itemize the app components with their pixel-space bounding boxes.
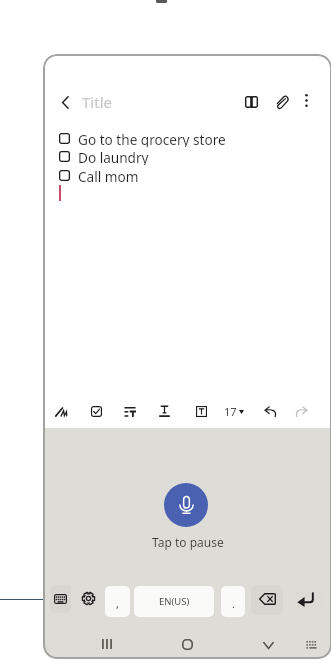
button[interactable]: Undo — [257, 398, 283, 424]
button[interactable]: Text box — [188, 398, 214, 424]
button[interactable]: Show keyboard — [50, 585, 71, 613]
button[interactable]: Home — [174, 631, 200, 657]
button[interactable]: Paragraph style — [117, 398, 143, 424]
button[interactable]: Keyboard settings — [77, 587, 100, 610]
button[interactable]: Enter — [288, 585, 322, 615]
staticText: Tap to pause — [152, 534, 224, 550]
button[interactable]: Font size 17 — [219, 398, 249, 424]
button[interactable]: Checklist — [83, 398, 109, 424]
staticText: Title — [82, 92, 112, 112]
button[interactable]: Call mom — [59, 167, 284, 184]
button[interactable]: Attach — [268, 89, 294, 115]
staticText: EN(US) — [159, 595, 190, 608]
button[interactable]: . — [221, 586, 245, 617]
staticText: Call mom — [78, 167, 139, 184]
button[interactable]: Backspace — [251, 585, 283, 615]
button[interactable]: Reading mode — [238, 89, 264, 115]
staticText: Go to the grocery store — [78, 130, 226, 147]
button[interactable]: Change keyboard — [298, 632, 324, 658]
button[interactable]: Pen — [48, 398, 74, 424]
staticText: , — [116, 596, 119, 611]
button[interactable]: Go to the grocery store — [59, 130, 284, 147]
button[interactable]: Redo — [288, 398, 314, 424]
button[interactable]: , — [105, 586, 130, 617]
button[interactable]: Recent apps — [94, 631, 120, 657]
button[interactable]: EN(US) — [134, 586, 214, 617]
button[interactable]: Back — [52, 89, 78, 115]
staticText: Do laundry — [78, 148, 149, 165]
staticText: 17 — [224, 404, 237, 419]
button[interactable]: Do laundry — [59, 148, 284, 165]
button[interactable]: More options — [295, 89, 317, 111]
button[interactable]: Text style — [151, 398, 177, 424]
button[interactable]: Hide keyboard — [255, 632, 281, 658]
button[interactable]: Pause voice input — [164, 483, 208, 527]
staticText: . — [232, 596, 235, 611]
